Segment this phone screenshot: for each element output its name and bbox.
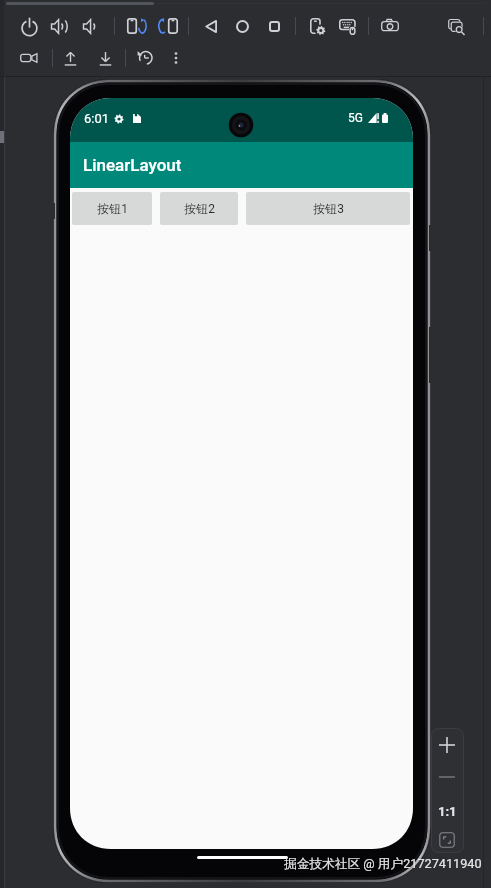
button[interactable]: Rotate right: [156, 13, 182, 39]
staticText: 掘金技术社区 @ 用户21727411940: [284, 856, 482, 872]
button[interactable]: Volume down: [79, 13, 105, 39]
staticText: 6:01: [84, 111, 110, 126]
staticText: 5G: [348, 111, 363, 125]
staticText: 按钮3: [313, 201, 344, 216]
button[interactable]: Upload file: [57, 45, 83, 71]
button[interactable]: Rotate left: [123, 13, 149, 39]
button[interactable]: Fit to screen: [434, 827, 460, 853]
button[interactable]: History: [132, 45, 158, 71]
button[interactable]: Power: [16, 13, 42, 39]
button[interactable]: Device settings: [304, 13, 330, 39]
staticText: 按钮1: [97, 201, 128, 216]
staticText: 1:1: [438, 804, 457, 819]
button[interactable]: Zoom out: [434, 764, 460, 790]
button[interactable]: Keyboard input: [335, 13, 361, 39]
button[interactable]: Layout inspector: [444, 13, 470, 39]
button[interactable]: Record screen: [16, 45, 42, 71]
button[interactable]: Take screenshot: [377, 13, 403, 39]
button[interactable]: Volume up: [47, 13, 73, 39]
button[interactable]: 按钮2: [160, 192, 238, 225]
button[interactable]: Download file: [92, 45, 118, 71]
staticText: LinearLayout: [83, 155, 182, 175]
button[interactable]: 按钮3: [246, 192, 410, 225]
button[interactable]: Zoom in: [434, 732, 460, 758]
button[interactable]: More options: [163, 45, 189, 71]
button[interactable]: 按钮1: [72, 192, 152, 225]
button[interactable]: Home: [229, 13, 255, 39]
button[interactable]: Back: [198, 13, 224, 39]
button[interactable]: 1:1: [433, 801, 461, 821]
staticText: 按钮2: [184, 201, 215, 216]
button[interactable]: Overview: [261, 13, 287, 39]
